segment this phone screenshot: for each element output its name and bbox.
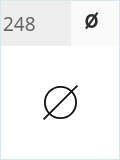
other: No data	[42, 84, 79, 121]
staticText: 248	[3, 11, 36, 37]
button[interactable]: No filter	[71, 1, 119, 46]
button[interactable]: 248	[1, 1, 71, 46]
